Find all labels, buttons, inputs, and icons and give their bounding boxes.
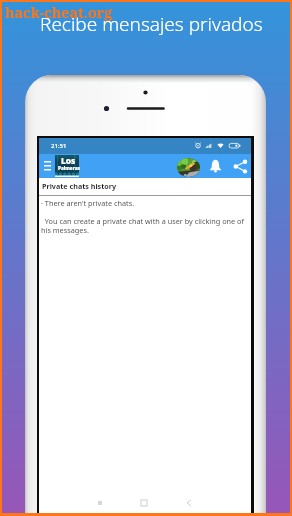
- button[interactable]: Los Palmeras: [55, 155, 79, 177]
- button[interactable]: Notifications: [205, 156, 225, 176]
- staticText: Palmeras: [58, 165, 80, 171]
- button[interactable]: Home: [134, 493, 154, 513]
- staticText: hack-cheat.org: [5, 3, 113, 22]
- button[interactable]: Menu: [40, 154, 55, 178]
- button[interactable]: Back: [179, 493, 199, 513]
- staticText: You can create a private chat with a use…: [41, 216, 247, 235]
- staticText: Los: [61, 155, 76, 166]
- staticText: · There aren't private chats.: [41, 198, 135, 208]
- button[interactable]: Profile: [177, 154, 200, 178]
- staticText: 21:51: [51, 142, 67, 150]
- staticText: Private chats history: [42, 181, 117, 191]
- button[interactable]: Share: [230, 156, 250, 176]
- button[interactable]: Recents: [90, 493, 110, 513]
- staticText: Recibe mensajes privados: [40, 11, 263, 37]
